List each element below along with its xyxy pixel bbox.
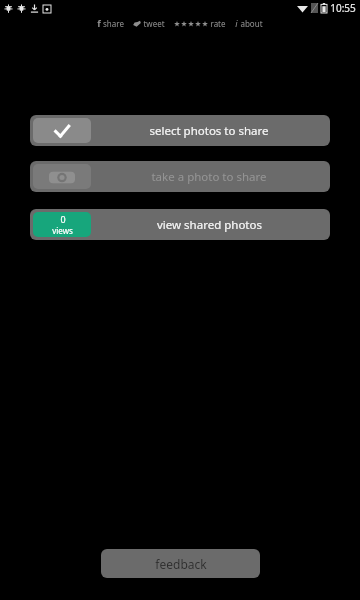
button[interactable]: Select photos [30, 115, 330, 146]
staticText: f [97, 17, 101, 29]
staticText: views [52, 225, 73, 236]
staticText: feedback [155, 556, 207, 572]
staticText: 0 [60, 213, 66, 225]
staticText: 10:55 [330, 1, 356, 15]
button[interactable]: feedback [101, 549, 260, 578]
staticText: share [103, 18, 124, 29]
button[interactable]: i [235, 17, 263, 29]
staticText: tweet [143, 18, 165, 29]
staticText: select photos to share [149, 123, 269, 139]
button[interactable]: f [97, 17, 124, 29]
staticText: i [235, 17, 238, 29]
staticText: take a photo to share [151, 169, 267, 185]
staticText: about [240, 18, 263, 29]
other: Take a photo [49, 170, 75, 184]
other: Select photos [52, 121, 72, 141]
button[interactable]: 0 [30, 209, 330, 240]
staticText: view shared photos [157, 217, 262, 233]
staticText: rate [210, 18, 226, 29]
button[interactable]: rate [174, 18, 226, 29]
button[interactable]: tweet [133, 18, 165, 29]
button: Take a photo [30, 161, 330, 192]
